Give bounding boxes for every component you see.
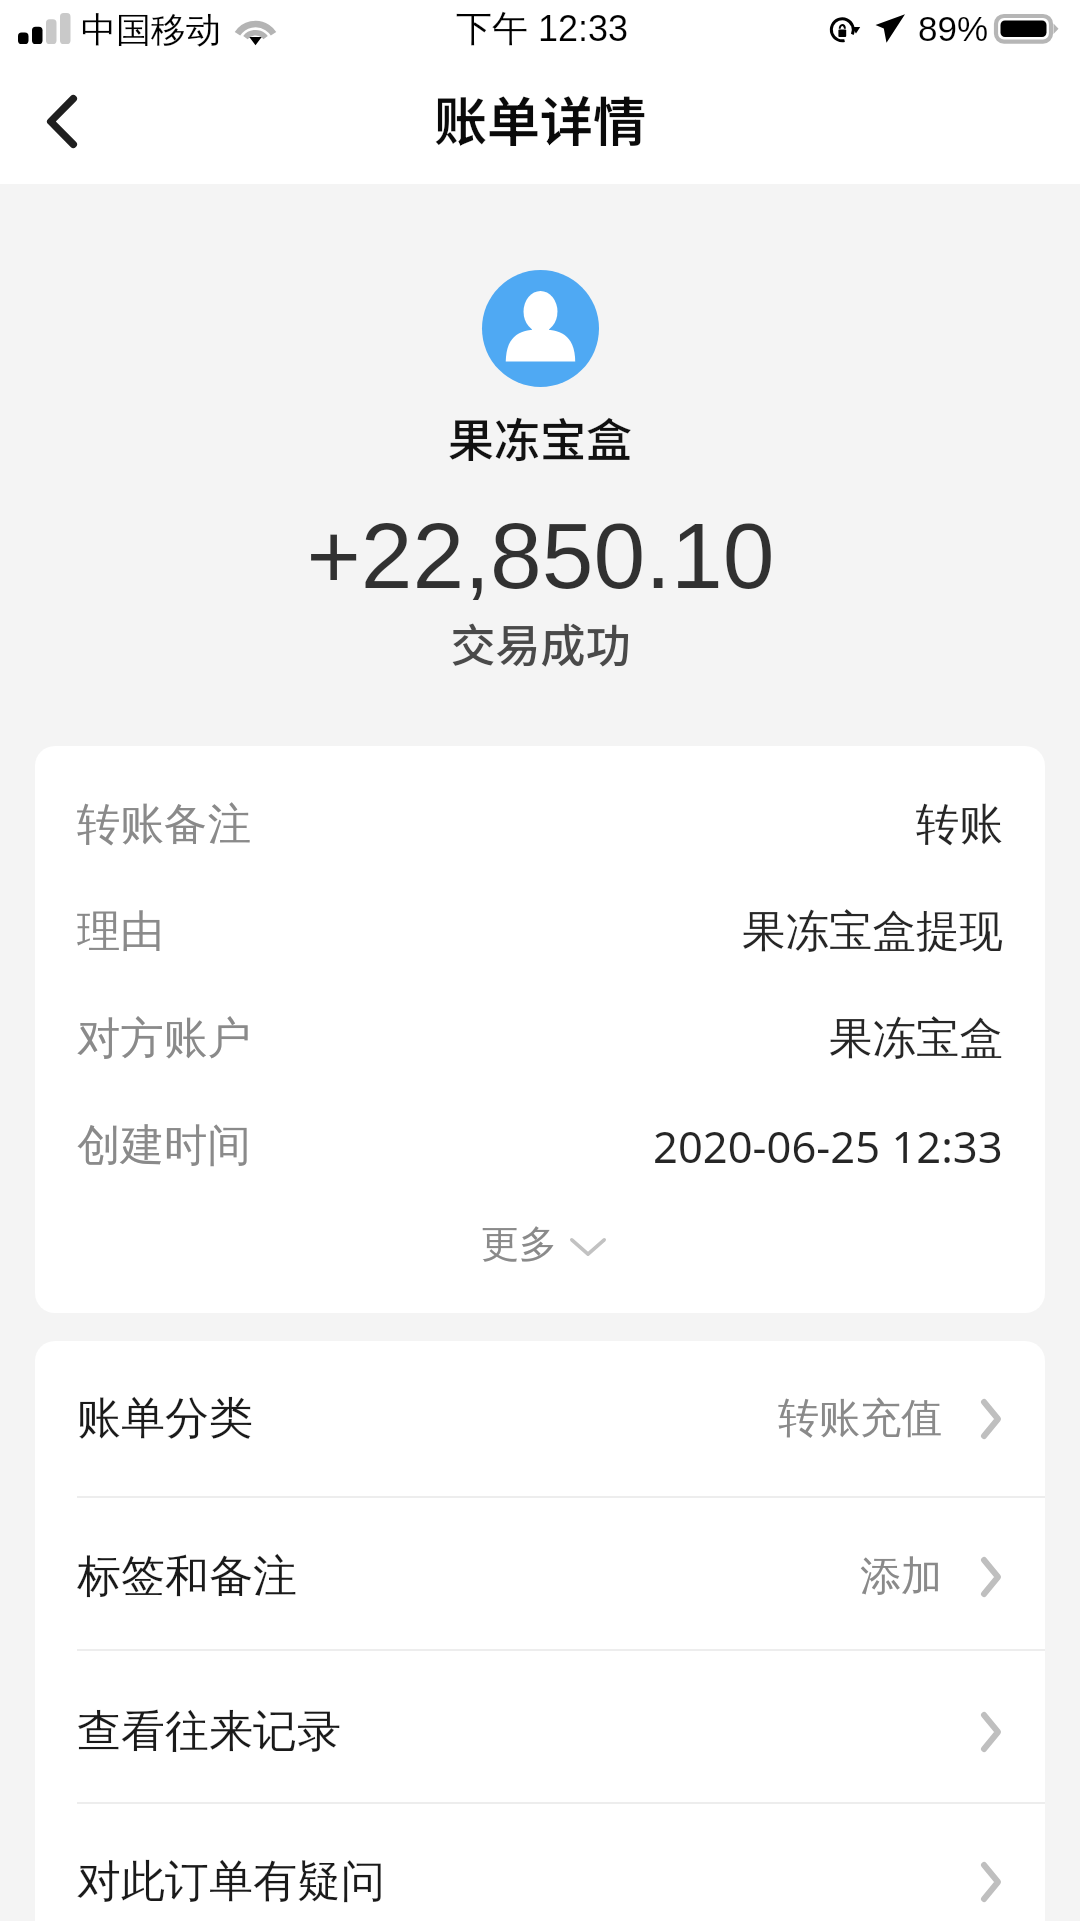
button[interactable]: Back	[17, 78, 107, 168]
staticText: 账单分类	[77, 1391, 253, 1446]
staticText: 理由	[77, 904, 164, 959]
staticText: 标签和备注	[77, 1549, 297, 1604]
staticText: +22,850.10	[306, 504, 775, 608]
button[interactable]: 标签和备注	[35, 1498, 1045, 1649]
staticText: 下午 12:33	[456, 6, 629, 51]
staticText: 创建时间	[77, 1118, 251, 1173]
staticText: 对方账户	[77, 1011, 251, 1066]
staticText: 查看往来记录	[77, 1704, 341, 1759]
staticText: 对此订单有疑问	[77, 1854, 385, 1909]
staticText: 添加	[860, 1551, 942, 1603]
staticText: 果冻宝盒	[448, 404, 632, 471]
staticText: 账单详情	[434, 80, 646, 157]
button[interactable]: 查看往来记录	[35, 1651, 1045, 1802]
staticText: 转账备注	[77, 797, 251, 852]
staticText: 2020-06-25 12:33	[653, 1116, 1003, 1175]
staticText: 果冻宝盒提现	[742, 904, 1003, 959]
staticText: 中国移动	[81, 8, 221, 52]
button[interactable]: 对此订单有疑问	[35, 1804, 1045, 1921]
staticText: 果冻宝盒	[829, 1011, 1003, 1066]
staticText: 转账充值	[778, 1393, 942, 1445]
staticText: 89%	[918, 9, 989, 48]
staticText: 更多	[481, 1220, 557, 1268]
staticText: 转账	[916, 797, 1003, 852]
button[interactable]: 账单分类	[35, 1341, 1045, 1496]
staticText: 交易成功	[450, 610, 631, 675]
button[interactable]: 更多	[35, 1199, 1045, 1288]
